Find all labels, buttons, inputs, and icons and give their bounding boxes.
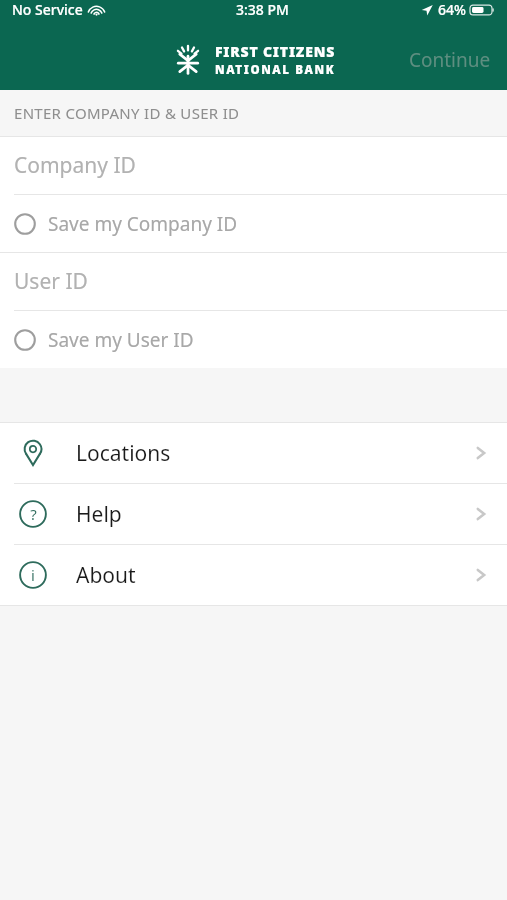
staticText: Continue [409, 47, 491, 73]
button[interactable]: Save my User ID [0, 311, 507, 368]
staticText: About [76, 561, 136, 590]
staticText: Help [76, 500, 122, 529]
staticText: Locations [76, 439, 171, 468]
staticText: FIRST CITIZENS [215, 42, 336, 61]
staticText: NATIONAL BANK [215, 62, 336, 78]
staticText: Save my User ID [48, 327, 194, 353]
button[interactable]: Company ID [0, 137, 507, 194]
staticText: 3:38 PM [236, 0, 289, 19]
staticText: No Service [12, 0, 83, 19]
staticText: 64% [438, 0, 466, 19]
staticText: i [31, 565, 35, 585]
button[interactable]: i [0, 545, 507, 605]
staticText: User ID [14, 267, 88, 296]
button[interactable]: Locations [0, 423, 507, 483]
staticText: ? [30, 504, 37, 524]
button[interactable]: User ID [0, 253, 507, 310]
button[interactable]: Save my Company ID [0, 195, 507, 252]
other: Open [473, 506, 489, 522]
button[interactable]: Continue [393, 37, 507, 83]
staticText: Company ID [14, 151, 136, 180]
other: Open [473, 567, 489, 583]
staticText: Save my Company ID [48, 211, 238, 237]
staticText: ENTER COMPANY ID & USER ID [14, 103, 240, 123]
button[interactable]: ? [0, 484, 507, 544]
other: Open [473, 445, 489, 461]
